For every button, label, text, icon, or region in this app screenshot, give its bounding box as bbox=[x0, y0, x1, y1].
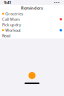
staticText: 9:41 bbox=[4, 0, 11, 5]
staticText: Call Mom bbox=[2, 17, 20, 22]
staticText: Reminders bbox=[21, 5, 43, 11]
staticText: Workout bbox=[5, 28, 20, 33]
staticText: ••• bbox=[54, 0, 60, 5]
staticText: Read bbox=[2, 33, 10, 38]
staticText: Pick up dry bbox=[2, 22, 21, 27]
staticText: Groceries bbox=[5, 11, 23, 16]
